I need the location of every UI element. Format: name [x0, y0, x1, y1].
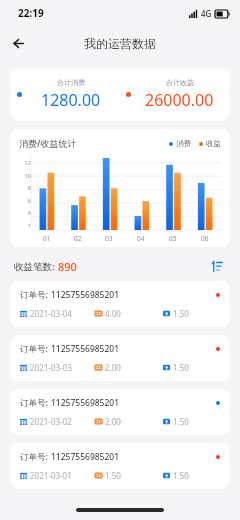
staticText: 1.50: [173, 362, 189, 373]
staticText: 1280.00: [41, 89, 101, 111]
button[interactable]: 订单号:: [11, 389, 229, 435]
staticText: 01: [43, 234, 51, 243]
staticText: 11257556985201: [51, 289, 120, 301]
staticText: 消费: [176, 139, 191, 148]
staticText: 收益: [206, 139, 221, 148]
staticText: 11257556985201: [51, 343, 120, 355]
staticText: 22:19: [18, 6, 44, 20]
staticText: 合计收益: [166, 78, 194, 87]
staticText: 订单号:: [20, 289, 48, 301]
staticText: 05: [169, 234, 177, 243]
button[interactable]: 订单号:: [11, 281, 229, 327]
staticText: 4: [27, 209, 31, 217]
staticText: 2021-03-01: [30, 470, 72, 481]
staticText: 890: [58, 259, 77, 274]
staticText: 我的运营数据: [84, 36, 156, 51]
staticText: 1.50: [173, 308, 189, 319]
staticText: 2021-03-02: [30, 416, 72, 427]
staticText: 12: [24, 159, 31, 167]
button[interactable]: Sort: [208, 257, 226, 275]
staticText: 1.50: [173, 470, 189, 481]
staticText: 04: [137, 234, 145, 243]
staticText: 订单号:: [20, 451, 48, 463]
staticText: 4G: [201, 8, 212, 19]
button[interactable]: 订单号:: [11, 443, 229, 489]
staticText: 2.00: [105, 362, 121, 373]
staticText: 06: [201, 234, 209, 243]
staticText: 2.00: [105, 416, 121, 427]
staticText: 4.00: [105, 308, 121, 319]
button[interactable]: 订单号:: [11, 335, 229, 381]
button[interactable]: 合计消费: [11, 68, 229, 121]
staticText: 合计消费: [57, 78, 85, 87]
staticText: 1.50: [105, 470, 121, 481]
staticText: 03: [105, 234, 113, 243]
staticText: 8: [27, 184, 31, 192]
staticText: 26000.00: [145, 89, 214, 111]
staticText: 11257556985201: [51, 397, 120, 409]
staticText: 2021-03-04: [30, 308, 72, 319]
staticText: 订单号:: [20, 397, 48, 409]
staticText: 1.50: [173, 416, 189, 427]
staticText: 6: [27, 197, 31, 205]
staticText: 11257556985201: [51, 451, 120, 463]
staticText: 2021-03-03: [30, 362, 72, 373]
staticText: 收益笔数:: [14, 260, 55, 273]
staticText: 订单号:: [20, 343, 48, 355]
staticText: 消费/收益统计: [19, 137, 77, 149]
staticText: 02: [74, 234, 82, 243]
staticText: 10: [24, 172, 31, 180]
staticText: 2: [27, 222, 31, 227]
button[interactable]: Back: [6, 28, 36, 58]
